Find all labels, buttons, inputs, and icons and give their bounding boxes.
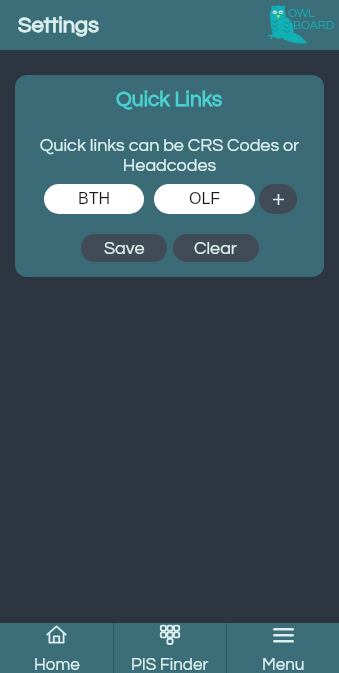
- button[interactable]: Menu: [227, 623, 339, 673]
- button[interactable]: OLF: [154, 184, 255, 214]
- button[interactable]: Save: [81, 234, 167, 262]
- button[interactable]: BTH: [44, 184, 144, 214]
- staticText: Quick Links: [116, 89, 223, 111]
- staticText: Menu: [262, 656, 305, 673]
- button[interactable]: Clear: [173, 234, 259, 262]
- staticText: OWL: [288, 7, 315, 19]
- button[interactable]: PIS Finder: [114, 623, 226, 673]
- staticText: Save: [104, 239, 145, 258]
- staticText: Quick links can be CRS Codes or Headcode…: [25, 136, 314, 175]
- button[interactable]: Home: [0, 623, 113, 673]
- staticText: Clear: [194, 239, 238, 258]
- staticText: BTH: [78, 190, 110, 208]
- other: Owl Board: [268, 0, 339, 50]
- staticText: Home: [34, 656, 80, 673]
- staticText: PIS Finder: [131, 656, 209, 673]
- staticText: BOARD: [293, 19, 335, 31]
- staticText: OLF: [189, 190, 221, 208]
- button[interactable]: Add quick link: [259, 184, 297, 214]
- staticText: Settings: [18, 14, 99, 37]
